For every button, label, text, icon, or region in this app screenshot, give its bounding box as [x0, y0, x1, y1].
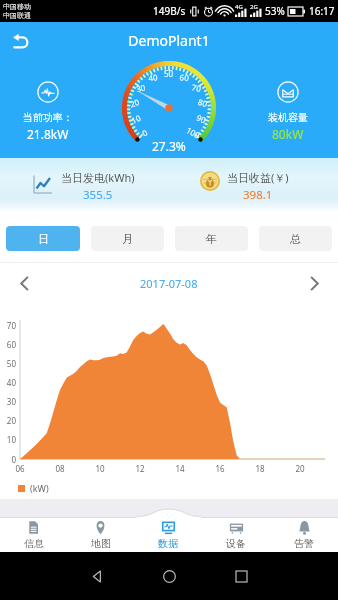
button[interactable]: Next day [296, 265, 332, 301]
staticText: 设备 [226, 537, 246, 550]
staticText: 当日发电(kWh) [61, 170, 135, 185]
staticText: 50 [0, 358, 16, 369]
staticText: 70 [0, 320, 16, 331]
staticText: 信息 [24, 537, 44, 550]
staticText: 0 [0, 454, 16, 465]
staticText: 中国联通 [3, 11, 31, 20]
button[interactable]: 地图 [67, 517, 134, 552]
staticText: 06 [10, 463, 30, 474]
staticText: 地图 [91, 537, 111, 550]
staticText: 4G [235, 3, 243, 11]
button[interactable]: 数据 [134, 517, 202, 552]
button[interactable]: 信息 [0, 517, 67, 552]
staticText: 60 [0, 339, 16, 350]
staticText: 16 [210, 463, 230, 474]
staticText: 80kW [272, 126, 304, 142]
staticText: 30 [0, 396, 16, 407]
staticText: 27.3% [152, 138, 186, 154]
button[interactable]: 日 [6, 226, 80, 251]
staticText: 中国移动 [3, 2, 31, 11]
staticText: 10 [90, 463, 110, 474]
staticText: 398.1 [243, 187, 273, 203]
staticText: 数据 [158, 537, 178, 550]
button[interactable]: 告警 [270, 517, 338, 552]
button[interactable]: 年 [175, 226, 248, 251]
staticText: 08 [50, 463, 70, 474]
staticText: 149B/s [153, 4, 186, 18]
button[interactable]: Back [4, 24, 36, 56]
staticText: 当前功率： [23, 111, 73, 124]
staticText: 告警 [294, 537, 314, 550]
staticText: 16:17 [309, 4, 335, 18]
staticText: 10 [0, 434, 16, 445]
button[interactable]: 总 [259, 226, 332, 251]
staticText: 当日收益(￥) [227, 170, 289, 185]
staticText: 2017-07-08 [140, 276, 198, 291]
staticText: 月 [122, 232, 133, 246]
button[interactable]: Back [75, 554, 119, 598]
staticText: DemoPlant1 [128, 31, 210, 50]
button[interactable]: Home [147, 554, 191, 598]
staticText: 355.5 [83, 187, 113, 203]
staticText: 20 [290, 463, 310, 474]
staticText: 20 [0, 415, 16, 426]
button[interactable]: 月 [91, 226, 164, 251]
staticText: 装机容量 [268, 111, 308, 124]
staticText: 21.8kW [27, 126, 69, 142]
button[interactable]: Recents [219, 554, 263, 598]
staticText: 年 [206, 232, 217, 246]
button[interactable]: Previous day [6, 265, 42, 301]
staticText: 40 [0, 377, 16, 388]
staticText: 53% [265, 4, 285, 18]
staticText: 14 [170, 463, 190, 474]
staticText: 18 [250, 463, 270, 474]
staticText: 2G [250, 3, 258, 11]
staticText: 日 [38, 232, 49, 246]
staticText: (kW) [30, 482, 49, 494]
button[interactable]: 设备 [202, 517, 270, 552]
staticText: 12 [130, 463, 150, 474]
staticText: 总 [290, 232, 301, 246]
